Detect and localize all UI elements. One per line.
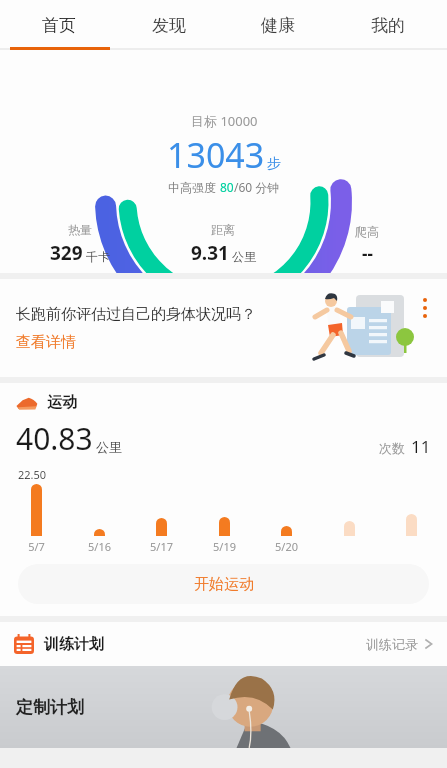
button[interactable]: 开始运动 <box>18 564 429 604</box>
staticText: 5/20 <box>275 539 298 554</box>
staticText: -- <box>362 242 373 265</box>
staticText: 9.31 <box>191 240 229 266</box>
button[interactable]: 长跑前你评估过自己的身体状况吗？ <box>0 279 447 377</box>
button[interactable]: 热量 <box>8 222 151 266</box>
staticText: 目标 10000 <box>191 112 258 130</box>
staticText: 329 <box>50 240 83 266</box>
staticText: 40.83 <box>16 418 93 459</box>
staticText: 长跑前你评估过自己的身体状况吗？ <box>16 305 256 324</box>
button[interactable]: 发现 <box>119 0 219 50</box>
staticText: 22.50 <box>18 467 47 482</box>
staticText: 5/16 <box>88 539 111 554</box>
staticText: 千卡 <box>86 249 110 264</box>
staticText: 11 <box>411 435 431 458</box>
staticText: 我的 <box>371 15 405 36</box>
staticText: 5/19 <box>213 539 236 554</box>
staticText: 13043 <box>167 132 265 178</box>
button[interactable]: 运动 <box>16 393 447 412</box>
staticText: 公里 <box>232 249 256 264</box>
staticText: 定制计划 <box>16 697 84 718</box>
staticText: /60 分钟 <box>234 179 280 195</box>
button[interactable]: 距离 <box>151 222 295 266</box>
staticText: 发现 <box>152 15 186 36</box>
staticText: 爬高 <box>355 224 379 239</box>
button[interactable]: 更多 <box>413 291 437 331</box>
staticText: 80 <box>220 179 234 195</box>
staticText: 训练计划 <box>44 635 104 654</box>
button[interactable]: 首页 <box>9 0 109 50</box>
button[interactable]: 健康 <box>228 0 328 50</box>
staticText: 首页 <box>42 15 76 36</box>
button[interactable]: 爬高 <box>295 224 439 265</box>
button[interactable]: 定制计划 <box>0 666 447 748</box>
button[interactable]: 目标 10000 <box>0 50 447 215</box>
staticText: 公里 <box>96 439 122 455</box>
staticText: 次数 <box>379 440 405 456</box>
staticText: 健康 <box>261 15 295 36</box>
staticText: 训练记录 <box>366 636 418 652</box>
button[interactable]: 我的 <box>338 0 438 50</box>
staticText: 步 <box>267 155 281 173</box>
staticText: 5/7 <box>28 539 45 554</box>
button[interactable]: 训练计划 <box>14 622 433 666</box>
staticText: 热量 <box>68 222 92 237</box>
staticText: 开始运动 <box>194 575 254 594</box>
staticText: 距离 <box>211 222 235 237</box>
staticText: 5/17 <box>150 539 173 554</box>
staticText: 运动 <box>47 393 77 412</box>
staticText: 中高强度 <box>168 179 220 195</box>
button[interactable]: 查看详情 <box>16 333 76 352</box>
